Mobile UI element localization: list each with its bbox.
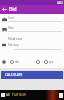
- button[interactable]: Option: [0, 59, 7, 65]
- staticText: Total cost: [8, 37, 23, 41]
- button[interactable]: Option: [42, 59, 49, 65]
- staticText: Markup: [8, 43, 19, 47]
- button[interactable]: Option: [8, 59, 15, 65]
- staticText: 4:02: [57, 1, 63, 5]
- staticText: Bid: [9, 6, 17, 13]
- staticText: xyz: [49, 60, 53, 64]
- staticText: CALCULATE: [5, 73, 23, 77]
- staticText: Cost: [8, 16, 14, 20]
- button[interactable]: Option: [34, 59, 41, 65]
- button[interactable]: Back: [0, 5, 8, 14]
- button[interactable]: CALCULATE: [1, 71, 63, 79]
- staticText: AD: [6, 93, 10, 97]
- staticText: PLAY NOW: [12, 93, 26, 97]
- staticText: abc: [15, 60, 20, 64]
- staticText: Rate: [8, 26, 14, 30]
